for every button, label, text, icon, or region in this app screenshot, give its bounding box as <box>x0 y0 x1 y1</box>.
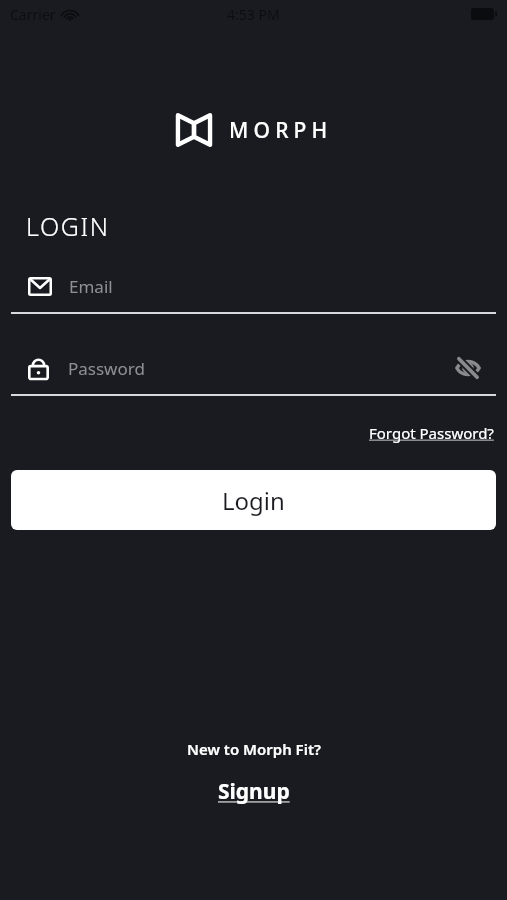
button[interactable]: Email <box>11 265 496 314</box>
staticText: New to Morph Fit? <box>187 739 321 759</box>
staticText: Signup <box>218 777 290 806</box>
staticText: Email <box>69 275 113 298</box>
button[interactable]: Forgot Password? <box>367 420 496 446</box>
staticText: Password <box>68 357 145 380</box>
button[interactable]: Show password <box>450 350 486 386</box>
staticText: 4:53 PM <box>227 5 280 24</box>
staticText: MORPH <box>229 116 333 145</box>
button[interactable]: Password <box>28 356 145 380</box>
staticText: Forgot Password? <box>369 423 494 443</box>
button[interactable]: Login <box>11 470 496 530</box>
staticText: Carrier <box>10 5 56 24</box>
button[interactable]: Signup <box>212 775 296 808</box>
staticText: Login <box>222 484 285 517</box>
staticText: LOGIN <box>26 209 110 243</box>
